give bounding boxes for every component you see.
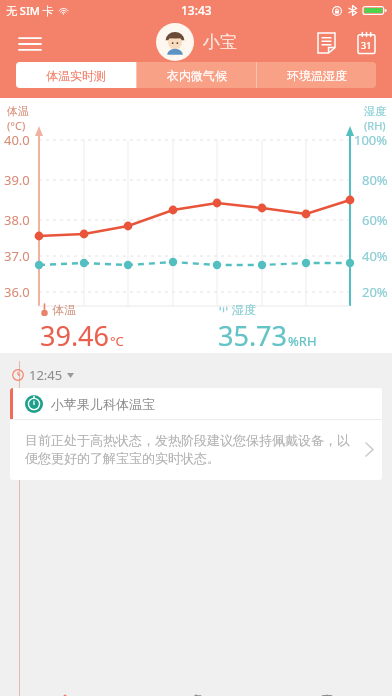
staticText: (°C) bbox=[7, 118, 26, 133]
button[interactable]: 环境温湿度 bbox=[257, 62, 376, 88]
staticText: 40.0 bbox=[4, 131, 30, 149]
staticText: 39.0 bbox=[4, 171, 30, 189]
staticText: 31 bbox=[361, 39, 372, 51]
staticText: 13:43 bbox=[181, 2, 212, 18]
staticText: 体温实时测 bbox=[46, 68, 106, 83]
staticText: 12:45 bbox=[29, 366, 63, 384]
button[interactable]: Calendar bbox=[348, 25, 384, 61]
staticText: 37.0 bbox=[4, 247, 30, 265]
staticText: 100% bbox=[354, 131, 388, 149]
staticText: 目前正处于高热状态，发热阶段建议您保持佩戴设备，以 便您更好的了解宝宝的实时状态… bbox=[25, 432, 365, 467]
staticText: 80% bbox=[362, 171, 388, 189]
staticText: %RH bbox=[288, 332, 317, 350]
button[interactable]: 衣内微气候 bbox=[137, 62, 256, 88]
button[interactable]: Notes bbox=[308, 25, 344, 61]
staticText: 39.46 bbox=[40, 317, 110, 353]
staticText: 体温 bbox=[52, 302, 76, 317]
button[interactable]: 小宝 bbox=[156, 23, 237, 61]
button[interactable]: Menu bbox=[12, 26, 48, 62]
staticText: 36.0 bbox=[4, 283, 30, 298]
staticText: (RH) bbox=[364, 118, 386, 133]
button[interactable]: 小苹果儿科体温宝 bbox=[10, 388, 382, 480]
staticText: 衣内微气候 bbox=[167, 68, 227, 83]
button[interactable]: 体温实时测 bbox=[16, 62, 136, 88]
staticText: 38.0 bbox=[4, 211, 30, 229]
staticText: 35.73 bbox=[218, 317, 288, 353]
staticText: 环境温湿度 bbox=[287, 68, 347, 83]
staticText: 湿度 bbox=[232, 302, 256, 317]
staticText: °C bbox=[110, 332, 124, 350]
staticText: 体温 bbox=[7, 104, 29, 118]
staticText: 20% bbox=[362, 283, 388, 298]
staticText: 60% bbox=[362, 211, 388, 229]
staticText: 湿度 bbox=[364, 104, 386, 118]
staticText: 小苹果儿科体温宝 bbox=[51, 396, 155, 412]
staticText: 无 SIM 卡 bbox=[6, 3, 54, 18]
staticText: 40% bbox=[362, 247, 388, 265]
staticText: 小宝 bbox=[203, 32, 237, 53]
